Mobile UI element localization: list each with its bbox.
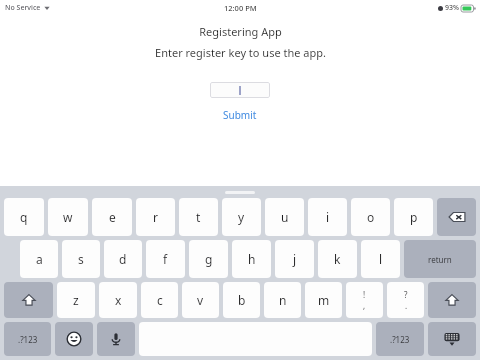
button[interactable]: g xyxy=(189,240,228,278)
button[interactable]: Backspace xyxy=(437,198,476,236)
staticText: , xyxy=(363,300,366,311)
staticText: e xyxy=(109,209,116,225)
staticText: x xyxy=(115,292,122,308)
button[interactable]: i xyxy=(308,198,347,236)
button[interactable]: v xyxy=(182,282,219,318)
button[interactable]: ! xyxy=(346,282,383,318)
staticText: ! xyxy=(363,289,366,300)
button[interactable]: f xyxy=(146,240,185,278)
staticText: q xyxy=(20,209,28,225)
button[interactable]: t xyxy=(179,198,218,236)
button[interactable]: c xyxy=(141,282,178,318)
staticText: k xyxy=(334,251,341,267)
button[interactable]: p xyxy=(394,198,433,236)
staticText: o xyxy=(367,209,375,225)
staticText: Enter register key to use the app. xyxy=(155,45,326,60)
staticText: j xyxy=(293,251,297,267)
staticText: y xyxy=(238,209,245,225)
staticText: f xyxy=(163,251,168,267)
button[interactable]: u xyxy=(265,198,304,236)
staticText: g xyxy=(205,251,213,267)
button[interactable]: m xyxy=(305,282,342,318)
button[interactable]: Hide keyboard xyxy=(428,322,476,356)
staticText: s xyxy=(78,251,84,267)
button[interactable]: ? xyxy=(387,282,424,318)
button[interactable]: Shift xyxy=(428,282,476,318)
button[interactable]: n xyxy=(264,282,301,318)
button[interactable]: z xyxy=(57,282,95,318)
button[interactable]: .?123 xyxy=(376,322,424,356)
staticText: 93% xyxy=(445,3,459,13)
button[interactable]: y xyxy=(222,198,261,236)
button[interactable]: x xyxy=(99,282,137,318)
button[interactable]: Shift xyxy=(4,282,53,318)
staticText: return xyxy=(428,254,452,265)
button[interactable]: d xyxy=(104,240,142,278)
staticText: 12:00 PM xyxy=(224,3,257,13)
staticText: . xyxy=(405,300,408,311)
staticText: a xyxy=(36,251,43,267)
staticText: m xyxy=(318,292,330,308)
staticText: v xyxy=(197,292,204,308)
button[interactable]: k xyxy=(318,240,357,278)
button[interactable]: Emoji xyxy=(55,322,93,356)
button[interactable]: a xyxy=(20,240,58,278)
staticText: w xyxy=(63,209,73,225)
staticText: u xyxy=(281,209,289,225)
staticText: l xyxy=(379,251,383,267)
staticText: Submit xyxy=(223,108,257,122)
staticText: p xyxy=(410,209,418,225)
staticText: i xyxy=(326,209,330,225)
button[interactable]: j xyxy=(275,240,314,278)
button[interactable] xyxy=(210,82,270,98)
button[interactable]: o xyxy=(351,198,390,236)
button[interactable]: s xyxy=(62,240,100,278)
button[interactable]: Submit xyxy=(217,106,263,124)
button[interactable]: return xyxy=(404,240,476,278)
button[interactable]: q xyxy=(4,198,44,236)
staticText: t xyxy=(196,209,201,225)
button[interactable]: .?123 xyxy=(4,322,51,356)
staticText: Registering App xyxy=(199,24,282,39)
staticText: d xyxy=(119,251,127,267)
button[interactable]: w xyxy=(48,198,88,236)
button[interactable]: h xyxy=(232,240,271,278)
button[interactable]: e xyxy=(92,198,132,236)
staticText: n xyxy=(279,292,287,308)
button[interactable]: b xyxy=(223,282,260,318)
staticText: h xyxy=(248,251,256,267)
button[interactable]: l xyxy=(361,240,400,278)
staticText: z xyxy=(73,292,79,308)
staticText: .?123 xyxy=(390,334,410,345)
button[interactable]: r xyxy=(136,198,175,236)
staticText: .?123 xyxy=(18,334,38,345)
staticText: No Service xyxy=(5,3,41,13)
button[interactable]: Dictation xyxy=(97,322,135,356)
staticText: c xyxy=(157,292,163,308)
staticText: ? xyxy=(404,289,408,300)
staticText: r xyxy=(153,209,158,225)
staticText: b xyxy=(238,292,246,308)
